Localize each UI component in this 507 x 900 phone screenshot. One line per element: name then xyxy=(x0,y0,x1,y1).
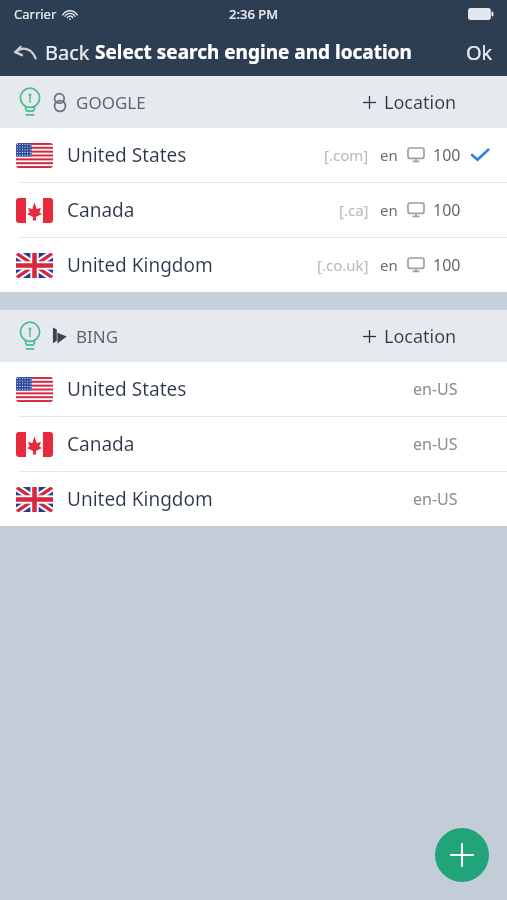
button[interactable]: United Kingdom xyxy=(0,238,507,292)
staticText: United Kingdom xyxy=(67,486,213,512)
button[interactable]: Location xyxy=(349,82,507,123)
staticText: GOOGLE xyxy=(76,91,146,114)
button[interactable]: Back xyxy=(0,33,98,72)
staticText: United States xyxy=(67,142,187,168)
staticText: en xyxy=(380,255,398,275)
button[interactable]: United Kingdom xyxy=(0,472,507,526)
button[interactable]: Canada xyxy=(0,183,507,237)
staticText: BING xyxy=(76,325,119,348)
staticText: Carrier xyxy=(14,5,57,23)
staticText: [.co.uk] xyxy=(317,255,369,275)
button[interactable]: Canada xyxy=(0,417,507,471)
button[interactable]: Ok xyxy=(456,31,507,74)
staticText: Location xyxy=(384,90,457,115)
button[interactable]: United States xyxy=(0,128,507,182)
staticText: [.ca] xyxy=(339,200,369,220)
staticText: en-US xyxy=(413,378,458,400)
staticText: 100 xyxy=(433,254,461,276)
staticText: Location xyxy=(384,324,457,349)
staticText: Canada xyxy=(67,197,135,223)
button[interactable]: United States xyxy=(0,362,507,416)
staticText: 100 xyxy=(433,199,461,221)
staticText: Select search engine and location xyxy=(95,39,412,65)
staticText: en xyxy=(380,145,398,165)
button[interactable]: Add xyxy=(435,828,489,882)
staticText: en xyxy=(380,200,398,220)
staticText: United Kingdom xyxy=(67,252,213,278)
staticText: [.com] xyxy=(324,145,369,165)
button[interactable]: Location xyxy=(349,316,507,357)
staticText: en-US xyxy=(413,433,458,455)
staticText: Back xyxy=(45,39,90,66)
staticText: Ok xyxy=(466,39,493,66)
staticText: United States xyxy=(67,376,187,402)
staticText: en-US xyxy=(413,488,458,510)
staticText: 2:36 PM xyxy=(229,5,279,23)
staticText: 100 xyxy=(433,144,461,166)
staticText: Canada xyxy=(67,431,135,457)
